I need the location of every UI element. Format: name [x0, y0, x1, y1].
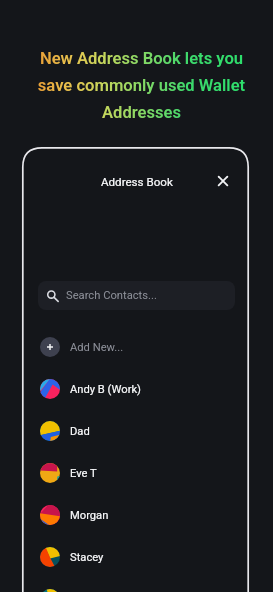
staticText: Dad: [70, 425, 90, 438]
button[interactable]: Stacey: [22, 536, 249, 578]
staticText: Stacey: [70, 551, 104, 564]
button[interactable]: Eve T: [22, 452, 249, 494]
staticText: Search Contacts...: [66, 289, 157, 302]
button[interactable]: Morgan: [22, 494, 249, 536]
button[interactable]: Add New...: [22, 326, 249, 368]
staticText: Morgan: [70, 509, 109, 522]
staticText: Address Book: [101, 175, 173, 189]
button[interactable]: Dad: [22, 410, 249, 452]
button[interactable]: Search Contacts...: [38, 281, 235, 310]
staticText: Eve T: [70, 467, 97, 480]
button[interactable]: Tom: [22, 578, 249, 592]
staticText: New Address Book lets you save commonly …: [33, 49, 250, 122]
button[interactable]: Close: [213, 171, 233, 191]
staticText: Andy B (Work): [70, 383, 142, 396]
staticText: Add New...: [70, 341, 124, 354]
button[interactable]: Andy B (Work): [22, 368, 249, 410]
